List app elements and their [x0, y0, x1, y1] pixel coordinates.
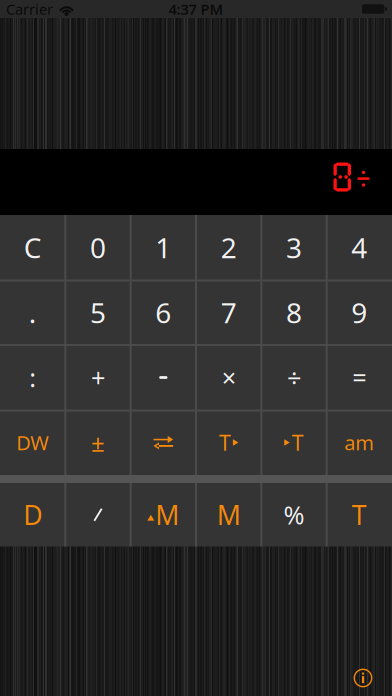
button[interactable]: × [196, 345, 261, 410]
button[interactable]: Memory add [131, 483, 196, 546]
staticText: T [352, 497, 367, 532]
staticText: T [219, 428, 231, 457]
button[interactable]: . [0, 280, 65, 345]
button[interactable]: 1 [131, 215, 196, 280]
button[interactable]: % [261, 483, 327, 546]
button[interactable]: M [196, 483, 261, 546]
button[interactable]: ÷ [261, 345, 327, 410]
button[interactable]: 5 [65, 280, 131, 345]
staticText: 6 [155, 294, 171, 331]
button[interactable]: C [0, 215, 65, 280]
button[interactable]: 8 [261, 280, 327, 345]
staticText: DW [16, 429, 49, 456]
button[interactable]: : [0, 345, 65, 410]
staticText: M [155, 497, 179, 532]
button[interactable]: + [65, 345, 131, 410]
staticText: C [24, 229, 42, 266]
staticText: D [23, 497, 42, 532]
staticText: Carrier [6, 0, 53, 19]
staticText: × [222, 361, 236, 394]
button[interactable]: = [327, 345, 392, 410]
button[interactable]: T [327, 483, 392, 546]
staticText: 3 [286, 229, 302, 266]
staticText: % [283, 498, 304, 531]
button[interactable]: / [65, 483, 131, 546]
staticText: 5 [90, 294, 106, 331]
button[interactable]: 6 [131, 280, 196, 345]
staticText: M [217, 497, 241, 532]
button[interactable]: - [131, 345, 196, 410]
staticText: 8 [286, 294, 302, 331]
button[interactable]: 9 [327, 280, 392, 345]
staticText: 2 [221, 229, 237, 266]
button[interactable]: 0 [65, 215, 131, 280]
button[interactable]: 7 [196, 280, 261, 345]
staticText: . [29, 294, 37, 331]
staticText: 4:37 PM [168, 0, 223, 19]
button[interactable]: 4 [327, 215, 392, 280]
button[interactable]: 2 [196, 215, 261, 280]
staticText: + [91, 361, 105, 394]
button[interactable]: D [0, 483, 65, 546]
button[interactable]: Back T [261, 410, 327, 475]
staticText: T [292, 428, 304, 457]
staticText: 7 [221, 294, 237, 331]
button[interactable]: DW [0, 410, 65, 475]
staticText: = [352, 361, 366, 394]
staticText: ± [91, 427, 105, 458]
button[interactable]: Swap [131, 410, 196, 475]
button[interactable]: 3 [261, 215, 327, 280]
staticText: 0 [90, 229, 106, 266]
button[interactable]: ± [65, 410, 131, 475]
button[interactable]: T forward [196, 410, 261, 475]
staticText: ÷ [287, 361, 301, 394]
staticText: am [344, 429, 374, 456]
button[interactable]: Info [353, 668, 373, 688]
staticText: 9 [351, 294, 367, 331]
staticText: 1 [155, 229, 171, 266]
staticText: 4 [351, 229, 367, 266]
staticText: : [29, 361, 36, 394]
button[interactable]: am [327, 410, 392, 475]
